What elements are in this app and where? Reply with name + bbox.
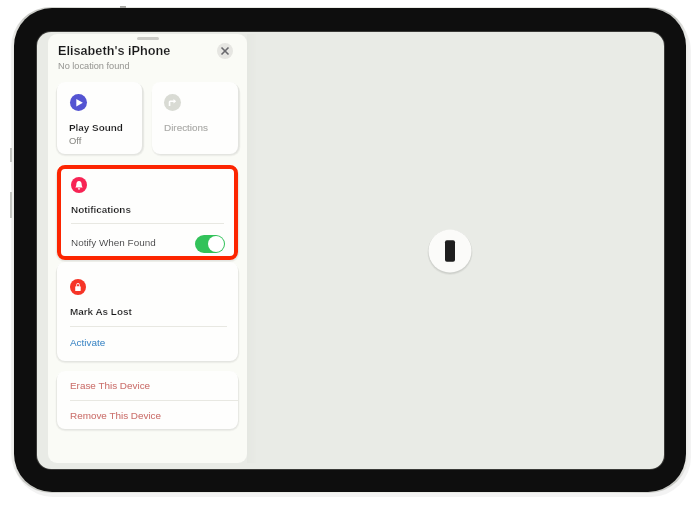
button[interactable]: Notify When Found <box>71 223 225 260</box>
staticText: Off <box>69 135 82 146</box>
button[interactable]: Notify When Found toggle <box>195 235 225 253</box>
button[interactable]: Activate <box>57 326 238 361</box>
staticText: Activate <box>70 337 106 348</box>
staticText: Directions <box>164 122 208 133</box>
staticText: Mark As Lost <box>70 306 132 317</box>
button[interactable]: Close <box>217 43 233 59</box>
button[interactable]: Play Sound <box>57 82 142 154</box>
button[interactable]: Remove This Device <box>57 401 238 429</box>
staticText: Notify When Found <box>71 237 195 248</box>
staticText: Notifications <box>71 204 131 215</box>
button[interactable]: Erase This Device <box>57 371 238 400</box>
button[interactable]: Directions <box>152 82 238 154</box>
staticText: Remove This Device <box>70 410 162 421</box>
staticText: Play Sound <box>69 122 123 133</box>
staticText: Erase This Device <box>70 380 151 391</box>
staticText: No location found <box>58 61 130 71</box>
staticText: Elisabeth's iPhone <box>58 44 171 58</box>
